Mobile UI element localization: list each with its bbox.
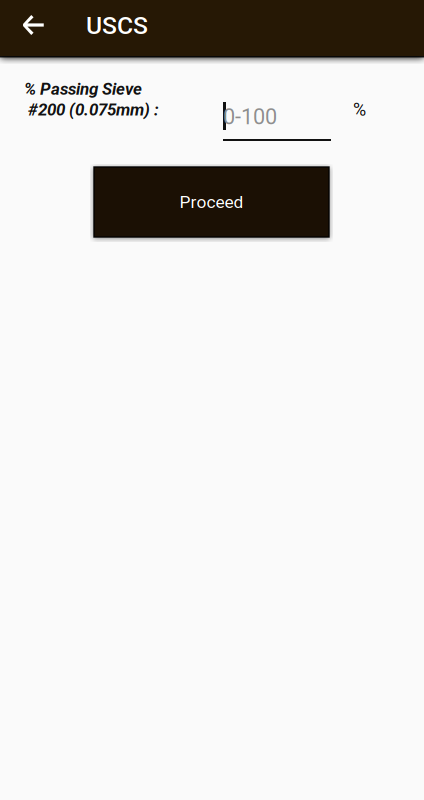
staticText: #200 (0.075mm) : bbox=[24, 100, 159, 120]
staticText: % bbox=[353, 99, 366, 120]
button[interactable]: Proceed bbox=[94, 167, 329, 237]
staticText: USCS bbox=[86, 11, 148, 40]
staticText: Proceed bbox=[179, 192, 243, 212]
button[interactable]: Percent passing sieve number 200 bbox=[223, 90, 331, 141]
button[interactable]: Back bbox=[9, 1, 57, 49]
staticText: 0-100 bbox=[223, 104, 277, 129]
staticText: % Passing Sieve bbox=[24, 79, 142, 99]
